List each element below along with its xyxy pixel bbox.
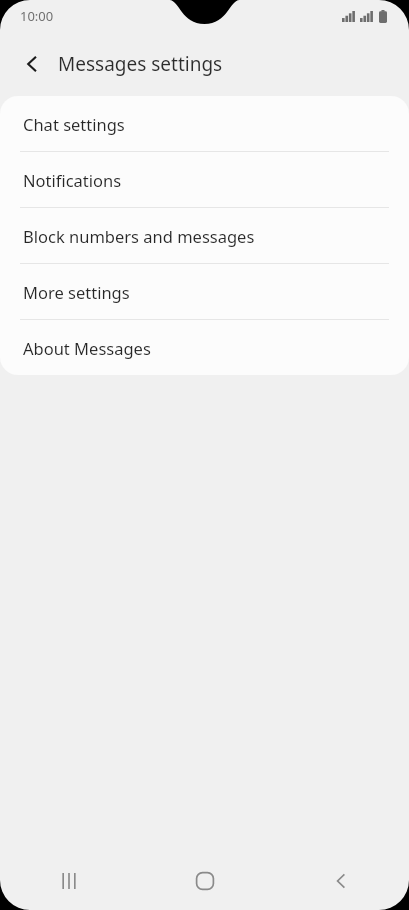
staticText: Notifications (23, 169, 122, 191)
staticText: Block numbers and messages (23, 225, 255, 247)
button[interactable]: Back (10, 42, 54, 86)
staticText: Chat settings (23, 113, 125, 135)
staticText: 10:00 (20, 7, 54, 25)
button[interactable]: Home (137, 852, 273, 910)
button[interactable]: Recents (0, 852, 137, 910)
staticText: Messages settings (58, 51, 223, 77)
button[interactable]: About Messages (0, 320, 409, 375)
staticText: More settings (23, 281, 130, 303)
button[interactable]: Notifications (0, 152, 409, 207)
button[interactable]: Back (273, 852, 409, 910)
button[interactable]: Chat settings (0, 96, 409, 151)
button[interactable]: Block numbers and messages (0, 208, 409, 263)
staticText: About Messages (23, 337, 151, 359)
button[interactable]: More settings (0, 264, 409, 319)
